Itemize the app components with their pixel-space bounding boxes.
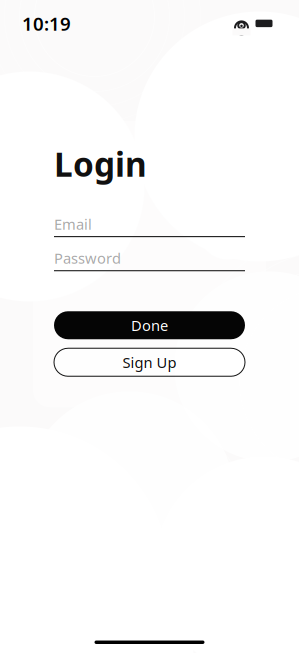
staticText: Email (54, 214, 92, 234)
button[interactable]: Done (54, 311, 245, 339)
staticText: Done (131, 315, 168, 335)
button[interactable]: Email (54, 216, 245, 232)
staticText: Sign Up (122, 352, 176, 372)
button[interactable]: Sign Up (54, 348, 245, 376)
staticText: Password (54, 248, 121, 268)
button[interactable]: Password (54, 250, 245, 266)
staticText: 10:19 (22, 11, 71, 36)
staticText: Login (54, 142, 147, 186)
